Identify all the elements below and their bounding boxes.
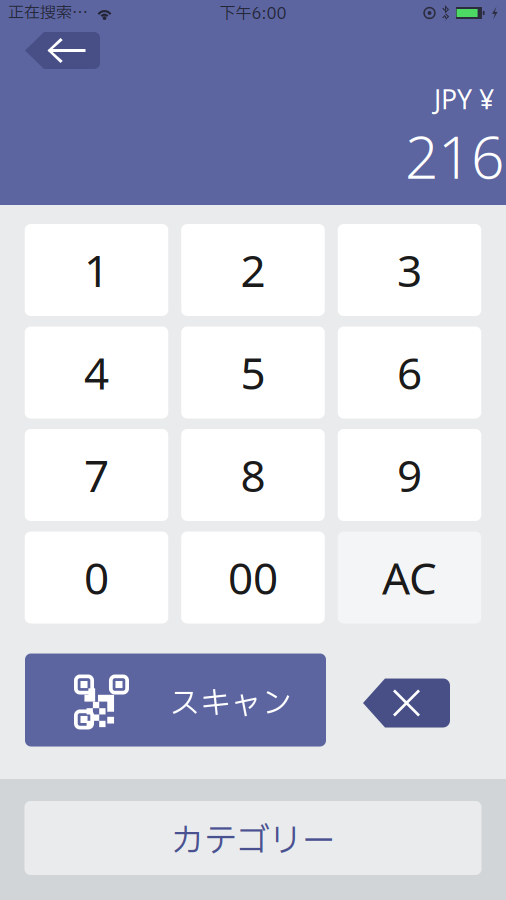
staticText: 6 — [397, 343, 422, 402]
staticText: 正在搜索… — [8, 1, 88, 25]
button[interactable]: 3 — [338, 224, 481, 316]
staticText: 4 — [84, 343, 109, 402]
staticText: 0 — [84, 548, 109, 607]
button[interactable]: Delete — [363, 678, 450, 727]
staticText: 216 — [405, 117, 504, 195]
button[interactable]: スキャン — [25, 653, 326, 746]
button[interactable]: 6 — [338, 326, 481, 418]
button[interactable]: 7 — [25, 429, 168, 521]
staticText: スキャン — [169, 681, 293, 727]
staticText: 1 — [84, 241, 109, 299]
button[interactable]: 0 — [25, 531, 168, 623]
staticText: 5 — [240, 343, 265, 402]
staticText: 2 — [240, 241, 265, 299]
staticText: JPY ¥ — [434, 81, 494, 117]
button[interactable]: 5 — [181, 326, 325, 418]
button[interactable]: 4 — [25, 326, 168, 418]
staticText: AC — [382, 548, 437, 607]
button[interactable]: カテゴリー — [24, 801, 481, 875]
staticText: 8 — [240, 446, 265, 504]
button[interactable]: 9 — [338, 429, 481, 521]
staticText: 9 — [397, 446, 422, 504]
button[interactable]: 2 — [181, 224, 325, 316]
button[interactable]: 8 — [181, 429, 325, 521]
button[interactable]: 1 — [25, 224, 168, 316]
staticText: 3 — [397, 241, 422, 299]
staticText: カテゴリー — [171, 817, 335, 867]
staticText: 00 — [228, 548, 278, 607]
button[interactable]: 00 — [181, 531, 325, 623]
button[interactable]: AC — [338, 531, 481, 623]
staticText: 下午6:00 — [219, 2, 286, 26]
button[interactable]: Back — [25, 32, 100, 69]
staticText: 7 — [84, 446, 109, 504]
